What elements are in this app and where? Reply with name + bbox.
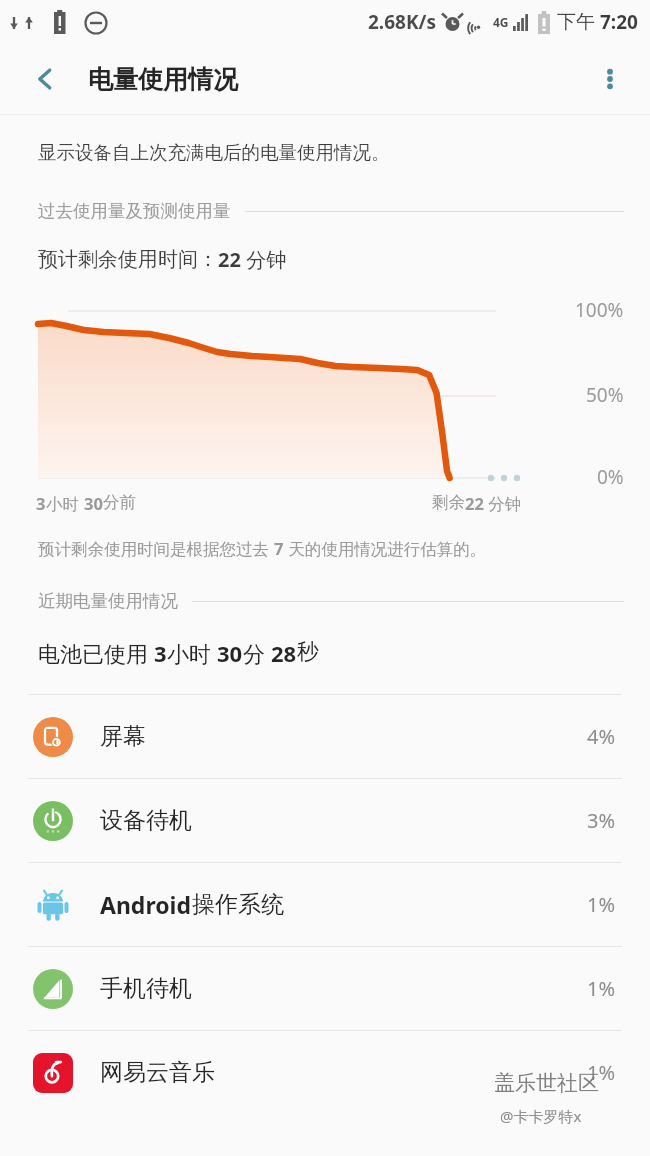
staticText: 7:20 [600,9,638,35]
button[interactable]: More options [586,55,634,103]
staticText: 操作系统 [192,890,284,919]
button[interactable]: 网易云音乐 [0,1031,650,1114]
staticText: 100% [575,297,624,323]
staticText: 1% [587,891,616,918]
staticText: 4G [493,14,509,30]
staticText: 50% [586,382,624,408]
staticText: 7 [274,537,284,559]
staticText: 4% [587,723,616,750]
staticText: 下午 [557,10,595,34]
staticText: 屏幕 [100,722,587,751]
staticText: 分前 [103,492,136,513]
staticText: 30 [217,638,243,668]
staticText: @卡卡罗特x [500,1106,582,1126]
staticText: 分 [243,638,271,668]
staticText: 分钟 [484,492,522,515]
staticText: 1% [587,1059,616,1086]
staticText: 电池已使用 [38,638,154,668]
staticText: 3% [587,807,616,834]
staticText: 显示设备自上次充满电后的电量使用情况。 [38,141,390,164]
button[interactable]: Back [22,56,68,102]
staticText: 近期电量使用情况 [38,590,178,612]
staticText: 盖乐世社区 [494,1070,599,1096]
staticText: 2.68K/s [368,9,436,35]
staticText: 1% [587,975,616,1002]
staticText: 3 [36,492,46,514]
staticText: 30 [84,492,103,514]
button[interactable]: 手机待机 [0,947,650,1030]
staticText: 0% [597,464,624,488]
staticText: 小时 [167,638,217,668]
staticText: 设备待机 [100,806,587,835]
staticText: 手机待机 [100,974,587,1003]
staticText: 预计剩余使用时间： [38,247,218,272]
staticText: 过去使用量及预测使用量 [38,200,231,222]
staticText: Android [100,889,192,920]
staticText: 天的使用情况进行估算的。 [284,537,487,560]
staticText: 22 [465,492,484,514]
staticText: 28 [271,638,297,668]
staticText: 3 [154,638,167,668]
staticText: 电量使用情况 [88,64,238,95]
staticText: 秒 [297,638,319,666]
staticText: 22 [218,246,241,273]
staticText: 分钟 [241,246,287,273]
button[interactable]: Android [0,863,650,946]
staticText: 小时 [46,492,84,515]
staticText: 预计剩余使用时间是根据您过去 [38,537,274,560]
button[interactable]: 屏幕 [0,695,650,778]
button[interactable]: 设备待机 [0,779,650,862]
staticText: 网易云音乐 [100,1058,587,1087]
staticText: 剩余 [432,492,465,513]
